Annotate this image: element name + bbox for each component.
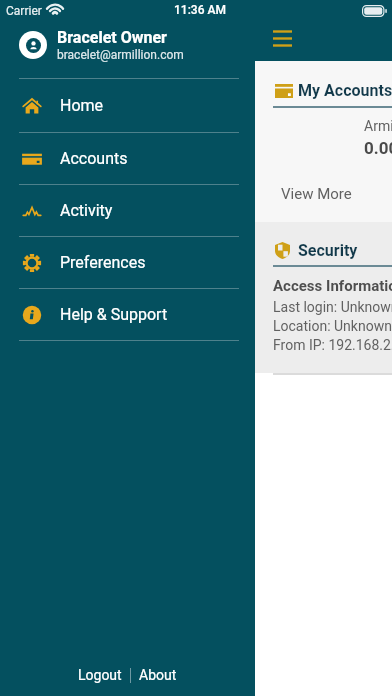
button[interactable]: About xyxy=(131,662,185,688)
staticText: Carrier xyxy=(6,4,42,18)
staticText: Last login: Unknown xyxy=(273,299,392,315)
staticText: Armillion Wallet xyxy=(364,118,392,134)
staticText: Location: Unknown xyxy=(273,318,392,334)
staticText: 0.00 ARM xyxy=(364,138,392,158)
button[interactable]: Open navigation menu xyxy=(269,25,295,51)
staticText: Accounts xyxy=(60,149,128,168)
staticText: About xyxy=(139,667,177,683)
staticText: Bracelet Owner xyxy=(57,28,167,47)
staticText: Access Information xyxy=(273,277,392,295)
staticText: Security xyxy=(298,241,358,260)
button[interactable]: Activity xyxy=(0,185,255,236)
staticText: Activity xyxy=(60,201,113,220)
staticText: Help & Support xyxy=(60,305,168,324)
button[interactable]: View More xyxy=(281,185,352,203)
button[interactable]: Home xyxy=(0,79,255,132)
staticText: From IP: 192.168.2.1 xyxy=(273,337,392,353)
button[interactable]: Accounts xyxy=(0,133,255,184)
button[interactable]: Preferences xyxy=(0,237,255,288)
button[interactable]: Logout xyxy=(70,662,130,688)
staticText: My Accounts xyxy=(298,81,392,100)
staticText: Preferences xyxy=(60,253,146,272)
staticText: bracelet@armillion.com xyxy=(57,48,184,62)
button[interactable]: Help & Support xyxy=(0,289,255,340)
staticText: View More xyxy=(281,185,352,203)
staticText: Home xyxy=(60,96,104,115)
staticText: Logout xyxy=(78,667,122,683)
staticText: 11:36 AM xyxy=(174,3,226,17)
